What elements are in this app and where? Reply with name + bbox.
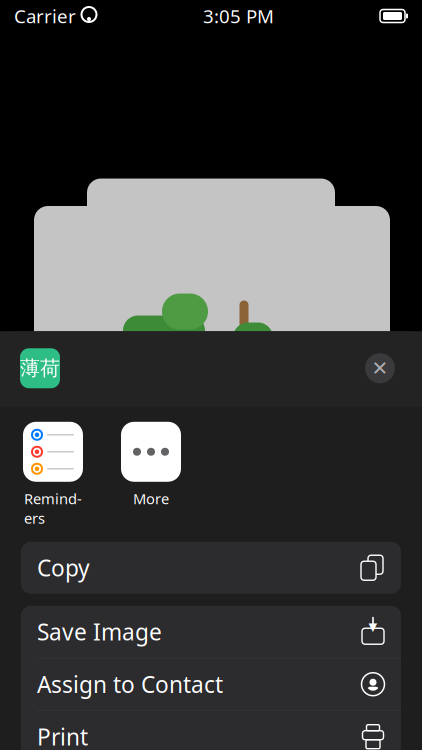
button[interactable]: Save Image: [21, 606, 401, 658]
staticText: Reminders: [24, 489, 82, 528]
staticText: Carrier: [14, 4, 76, 28]
button[interactable]: Assign to Contact: [21, 658, 401, 710]
staticText: 3:05 PM: [203, 4, 274, 28]
staticText: ▾: [368, 616, 377, 636]
staticText: 薄荷: [20, 356, 60, 381]
button[interactable]: Print: [21, 711, 401, 750]
button[interactable]: Close: [358, 346, 402, 390]
staticText: ✕: [371, 357, 388, 380]
staticText: Print: [37, 722, 88, 750]
button[interactable]: Reminders: [22, 422, 84, 528]
staticText: Save Image: [37, 617, 162, 647]
staticText: More: [133, 489, 169, 508]
staticText: Copy: [37, 553, 90, 583]
staticText: Assign to Contact: [37, 669, 223, 699]
button[interactable]: More: [120, 422, 182, 508]
button[interactable]: Copy: [21, 542, 401, 594]
